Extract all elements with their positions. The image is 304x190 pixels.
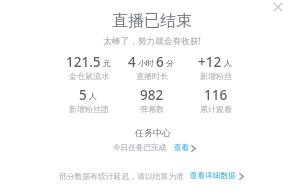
staticText: 金仓鼠流水 <box>29 71 149 81</box>
button[interactable]: 982 <box>92 86 212 104</box>
staticText: 查看详细数据 <box>190 171 236 181</box>
staticText: 6 <box>156 53 164 71</box>
staticText: 元 <box>103 58 111 68</box>
staticText: 5 <box>79 86 87 104</box>
staticText: 直播已结束 <box>2 11 302 31</box>
button[interactable]: 查看详细数据 <box>190 171 244 181</box>
button[interactable]: 121.5 <box>29 53 149 71</box>
staticText: 4 <box>128 53 136 71</box>
staticText: 太棒了，努力就会有收获! <box>2 35 302 47</box>
button[interactable]: 4 <box>92 53 212 71</box>
button[interactable]: 5 <box>29 86 149 104</box>
staticText: 查看 <box>174 143 190 153</box>
staticText: 分 <box>166 58 174 68</box>
staticText: 累计观看 <box>156 104 276 114</box>
button[interactable]: 今日任务已完成 <box>113 143 196 153</box>
staticText: 人 <box>224 58 232 68</box>
staticText: 今日任务已完成 <box>113 143 167 153</box>
button[interactable]: +12 <box>156 53 276 71</box>
staticText: 直播时长 <box>92 71 212 81</box>
staticText: 人 <box>89 91 97 101</box>
staticText: 弹幕数 <box>92 104 212 114</box>
staticText: 116 <box>204 86 228 104</box>
staticText: 121.5 <box>66 53 101 71</box>
button[interactable]: Close <box>268 0 288 17</box>
staticText: +12 <box>198 53 222 71</box>
staticText: 任务中心 <box>3 127 303 138</box>
staticText: 新增粉丝 <box>156 71 276 81</box>
staticText: 小时 <box>138 58 154 68</box>
button[interactable]: 116 <box>156 86 276 104</box>
staticText: 982 <box>140 86 164 104</box>
staticText: 部分数据有统计延迟，请以结算为准 <box>59 171 184 181</box>
staticText: 新增粉丝团 <box>29 104 149 114</box>
